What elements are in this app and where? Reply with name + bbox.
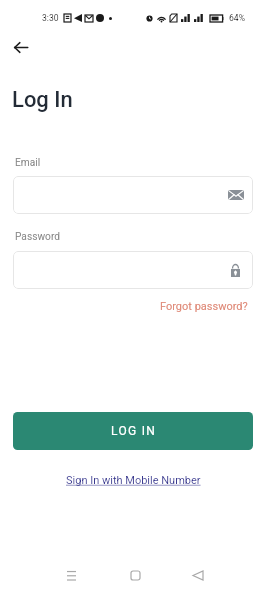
staticText: LOG IN [111,424,157,438]
staticText: 64% [229,13,245,23]
staticText: Log In [12,87,73,113]
button[interactable]: Back [4,31,37,64]
button[interactable]: Home [117,557,154,592]
staticText: Forgot password? [160,300,248,313]
button[interactable] [13,251,253,289]
button[interactable]: Forgot password? [160,300,248,313]
staticText: 3:30 [42,13,59,23]
button[interactable]: Back [179,557,216,592]
button[interactable]: Recents [53,557,90,592]
button[interactable]: LOG IN [13,412,253,450]
staticText: Email [15,157,41,169]
button[interactable] [13,176,253,214]
staticText: Sign In with Mobile Number [66,474,201,487]
staticText: Password [15,231,60,243]
button[interactable]: Sign In with Mobile Number [66,474,201,487]
